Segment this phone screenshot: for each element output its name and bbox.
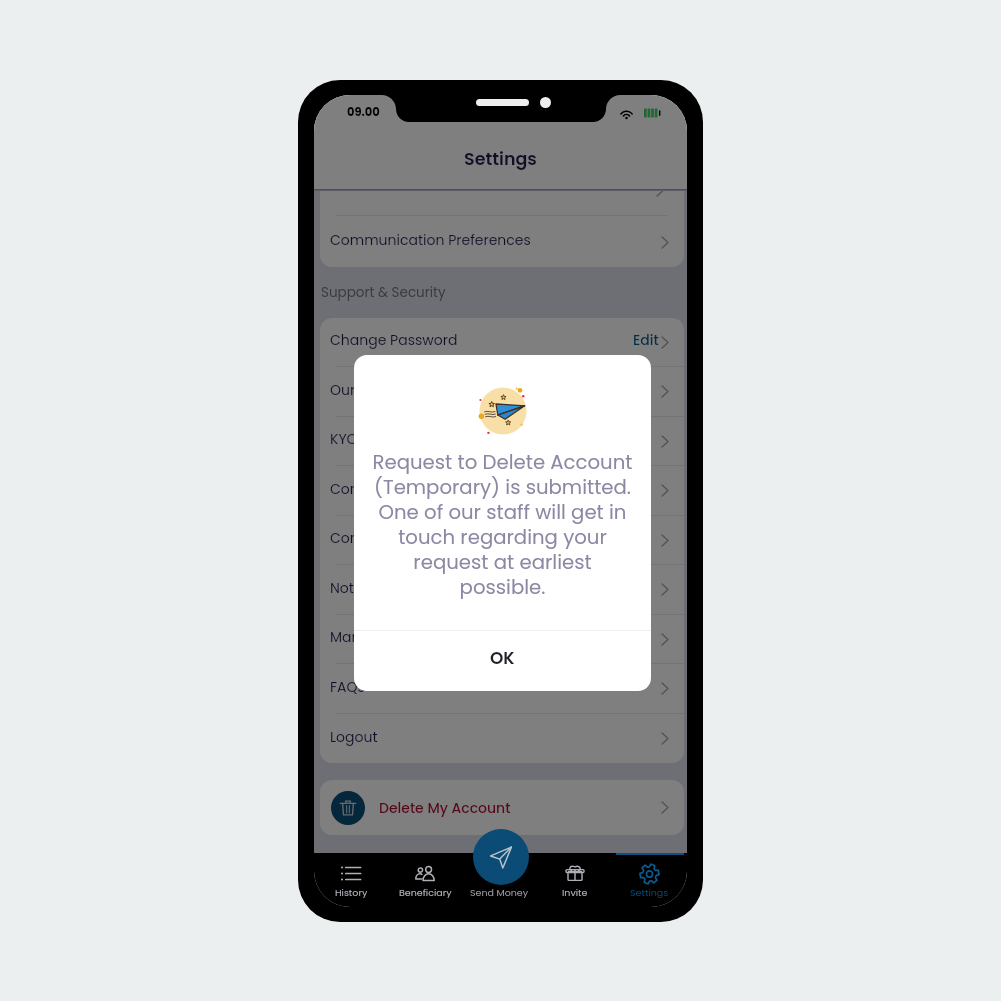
staticText: OK xyxy=(490,646,515,670)
staticText: Request to Delete Account (Temporary) is… xyxy=(369,448,636,600)
button[interactable]: Send Money xyxy=(473,829,529,885)
staticText: Manage Devices xyxy=(330,627,447,647)
button[interactable]: History xyxy=(314,853,388,907)
staticText: KYC xyxy=(330,429,358,449)
staticText: Beneficiary xyxy=(399,886,452,899)
staticText: Notifications xyxy=(330,578,418,598)
staticText: Settings xyxy=(464,147,537,172)
button[interactable]: Change Password xyxy=(320,318,684,367)
button[interactable]: Beneficiary xyxy=(388,853,462,907)
button[interactable]: Invite xyxy=(537,853,612,907)
staticText: History xyxy=(335,886,368,899)
staticText: Contact Us xyxy=(330,479,408,499)
button[interactable]: Complaints xyxy=(320,516,684,565)
staticText: Delete My Account xyxy=(379,798,511,818)
staticText: Settings xyxy=(630,886,669,899)
button[interactable]: Manage Devices xyxy=(320,615,684,664)
button[interactable]: Our Services xyxy=(320,367,684,417)
staticText: Support & Security xyxy=(321,283,446,302)
staticText: Our Services xyxy=(330,380,417,400)
button[interactable]: Contact Us xyxy=(320,466,684,516)
button[interactable]: Send Money xyxy=(462,853,537,907)
button[interactable]: OK xyxy=(354,631,651,691)
staticText: Change Password xyxy=(330,330,458,350)
button[interactable]: Settings xyxy=(612,853,687,907)
button[interactable]: Communication Preferences xyxy=(320,216,684,267)
staticText: Send Money xyxy=(470,886,529,899)
staticText: Logout xyxy=(330,727,378,747)
button[interactable]: Delete My Account xyxy=(320,780,684,835)
staticText: Edit xyxy=(633,330,659,350)
button[interactable]: FAQs xyxy=(320,664,684,714)
staticText: Complaints xyxy=(330,528,412,548)
button[interactable]: KYC xyxy=(320,417,684,466)
staticText: Communication Preferences xyxy=(330,230,531,250)
staticText: Invite xyxy=(562,886,588,899)
staticText: FAQs xyxy=(330,677,365,697)
button[interactable]: Logout xyxy=(320,714,684,763)
staticText: 09.00 xyxy=(347,104,380,120)
button[interactable]: Notifications xyxy=(320,565,684,615)
